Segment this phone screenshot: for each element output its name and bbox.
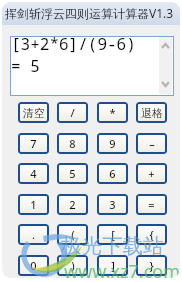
button[interactable]: 5 [57,163,88,184]
staticText: 挥剑斩浮云四则运算计算器V1.3 [5,5,174,21]
staticText: – [149,136,155,151]
button[interactable]: + [136,163,167,184]
staticText: } [149,258,154,273]
button[interactable]: { [136,224,167,245]
staticText: 7 [30,136,37,151]
button[interactable]: 0 [18,255,49,276]
staticText: 3 [109,197,116,212]
staticText: ( [71,227,75,242]
staticText: * [109,105,116,120]
button[interactable]: = [136,194,167,215]
staticText: [3+2*6]/(9-6) [11,33,136,55]
staticText: { [149,227,154,242]
button[interactable]: – [136,133,167,154]
staticText: www.xz7.com [64,259,180,278]
staticText: 5 [69,166,76,181]
button[interactable]: } [136,255,167,276]
button[interactable]: 7 [18,133,49,154]
staticText: 0 [30,258,37,273]
button[interactable]: 3 [97,194,128,215]
staticText: = [148,197,155,212]
staticText: 4 [30,166,37,181]
button[interactable]: ] [97,255,128,276]
button[interactable]: 退格 [136,102,167,123]
button[interactable]: 1 [18,194,49,215]
staticText: 8 [69,136,76,151]
staticText: / [70,105,75,120]
staticText: ) [71,258,75,273]
staticText: [ [111,227,115,242]
button[interactable]: 2 [57,194,88,215]
button[interactable]: 清空 [18,102,49,123]
button[interactable]: ) [57,255,88,276]
button[interactable]: 9 [97,133,128,154]
button[interactable]: / [57,102,88,123]
staticText: . [32,227,35,242]
staticText: + [148,166,155,181]
staticText: 极光下载站 [61,233,164,259]
staticText: 9 [109,136,116,151]
other: Scroll [159,36,172,94]
staticText: = 5 [11,55,40,77]
staticText: 清空 [23,106,45,120]
staticText: 1 [30,197,37,212]
staticText: 退格 [141,106,163,120]
staticText: 2 [69,197,76,212]
staticText: 6 [109,166,116,181]
button[interactable]: 6 [97,163,128,184]
button[interactable]: 4 [18,163,49,184]
button[interactable]: 8 [57,133,88,154]
staticText: ] [111,258,115,273]
button[interactable]: . [18,224,49,245]
button[interactable]: [ [97,224,128,245]
button[interactable]: ( [57,224,88,245]
button[interactable]: * [97,102,128,123]
